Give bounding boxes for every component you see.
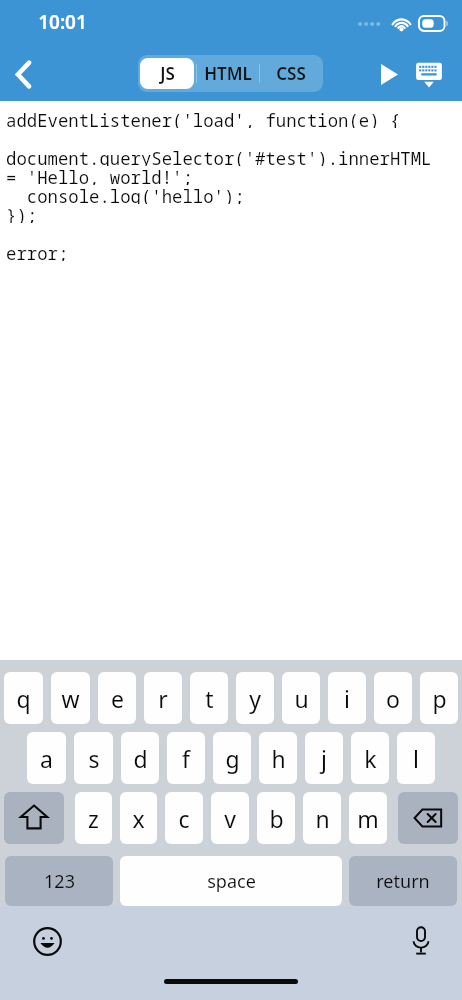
button[interactable]: space [120,856,342,906]
button[interactable]: Dictate [398,918,444,964]
staticText: t [205,683,214,714]
staticText: z [88,803,99,834]
staticText: c [178,803,190,834]
staticText: JS [160,62,175,85]
staticText: 10:01 [38,9,87,35]
button[interactable]: Shift [4,792,64,844]
staticText: a [40,743,53,774]
staticText: document.querySelector('#test').innerHTM… [6,147,432,166]
staticText: x [132,803,145,834]
staticText: i [344,683,350,714]
button[interactable]: h [259,732,297,784]
staticText: m [357,803,379,834]
button[interactable]: Hide keyboard [406,52,452,98]
staticText: k [364,743,377,774]
staticText: y [249,683,261,714]
button[interactable]: a [27,732,66,784]
staticText: = 'Hello, world!'; [6,166,193,185]
button[interactable]: t [190,672,228,724]
staticText: addEventListener('load', function(e) { [6,109,401,128]
staticText: n [315,803,330,834]
button[interactable]: s [74,732,113,784]
button[interactable]: x [120,792,157,844]
button[interactable]: Run [367,52,411,96]
staticText: g [225,743,240,774]
staticText: u [294,683,309,714]
staticText: error; [6,242,69,261]
button[interactable]: Emoji [24,918,70,964]
button[interactable]: HTML [197,55,259,92]
staticText: h [271,743,286,774]
button[interactable]: g [213,732,251,784]
button[interactable]: r [144,672,182,724]
button[interactable]: 123 [5,856,113,906]
staticText: q [16,683,31,714]
staticText: space [207,869,256,894]
staticText: l [413,743,419,774]
staticText: 123 [44,869,75,894]
button[interactable]: o [374,672,412,724]
button[interactable]: p [420,672,458,724]
button[interactable]: Backspace [398,792,458,844]
button[interactable]: q [4,672,43,724]
button[interactable]: l [397,732,435,784]
button[interactable]: m [349,792,387,844]
button[interactable]: u [282,672,320,724]
button[interactable]: j [305,732,343,784]
button[interactable]: JS [140,58,194,89]
staticText: p [432,683,447,714]
button[interactable]: c [165,792,203,844]
button[interactable]: e [98,672,136,724]
staticText: }); [6,204,38,223]
staticText: f [182,743,190,774]
button[interactable]: return [349,856,457,906]
staticText: e [111,683,124,714]
button[interactable]: b [257,792,295,844]
button[interactable]: Back [0,50,48,98]
staticText: o [386,683,400,714]
staticText: w [61,683,80,714]
staticText: b [269,803,284,834]
button[interactable]: CSS [260,55,321,92]
button[interactable]: w [51,672,90,724]
button[interactable]: k [351,732,389,784]
button[interactable]: d [121,732,159,784]
staticText: j [321,743,327,774]
button[interactable]: v [211,792,249,844]
staticText: HTML [204,62,252,85]
staticText: d [133,743,148,774]
staticText: return [376,869,430,894]
button[interactable]: z [75,792,112,844]
button[interactable]: f [167,732,205,784]
staticText: r [158,683,168,714]
staticText: v [224,803,236,834]
button[interactable]: i [328,672,366,724]
staticText: s [88,743,100,774]
staticText: CSS [276,62,306,85]
staticText: console.log('hello'); [6,185,245,204]
button[interactable]: y [236,672,274,724]
button[interactable]: n [303,792,341,844]
